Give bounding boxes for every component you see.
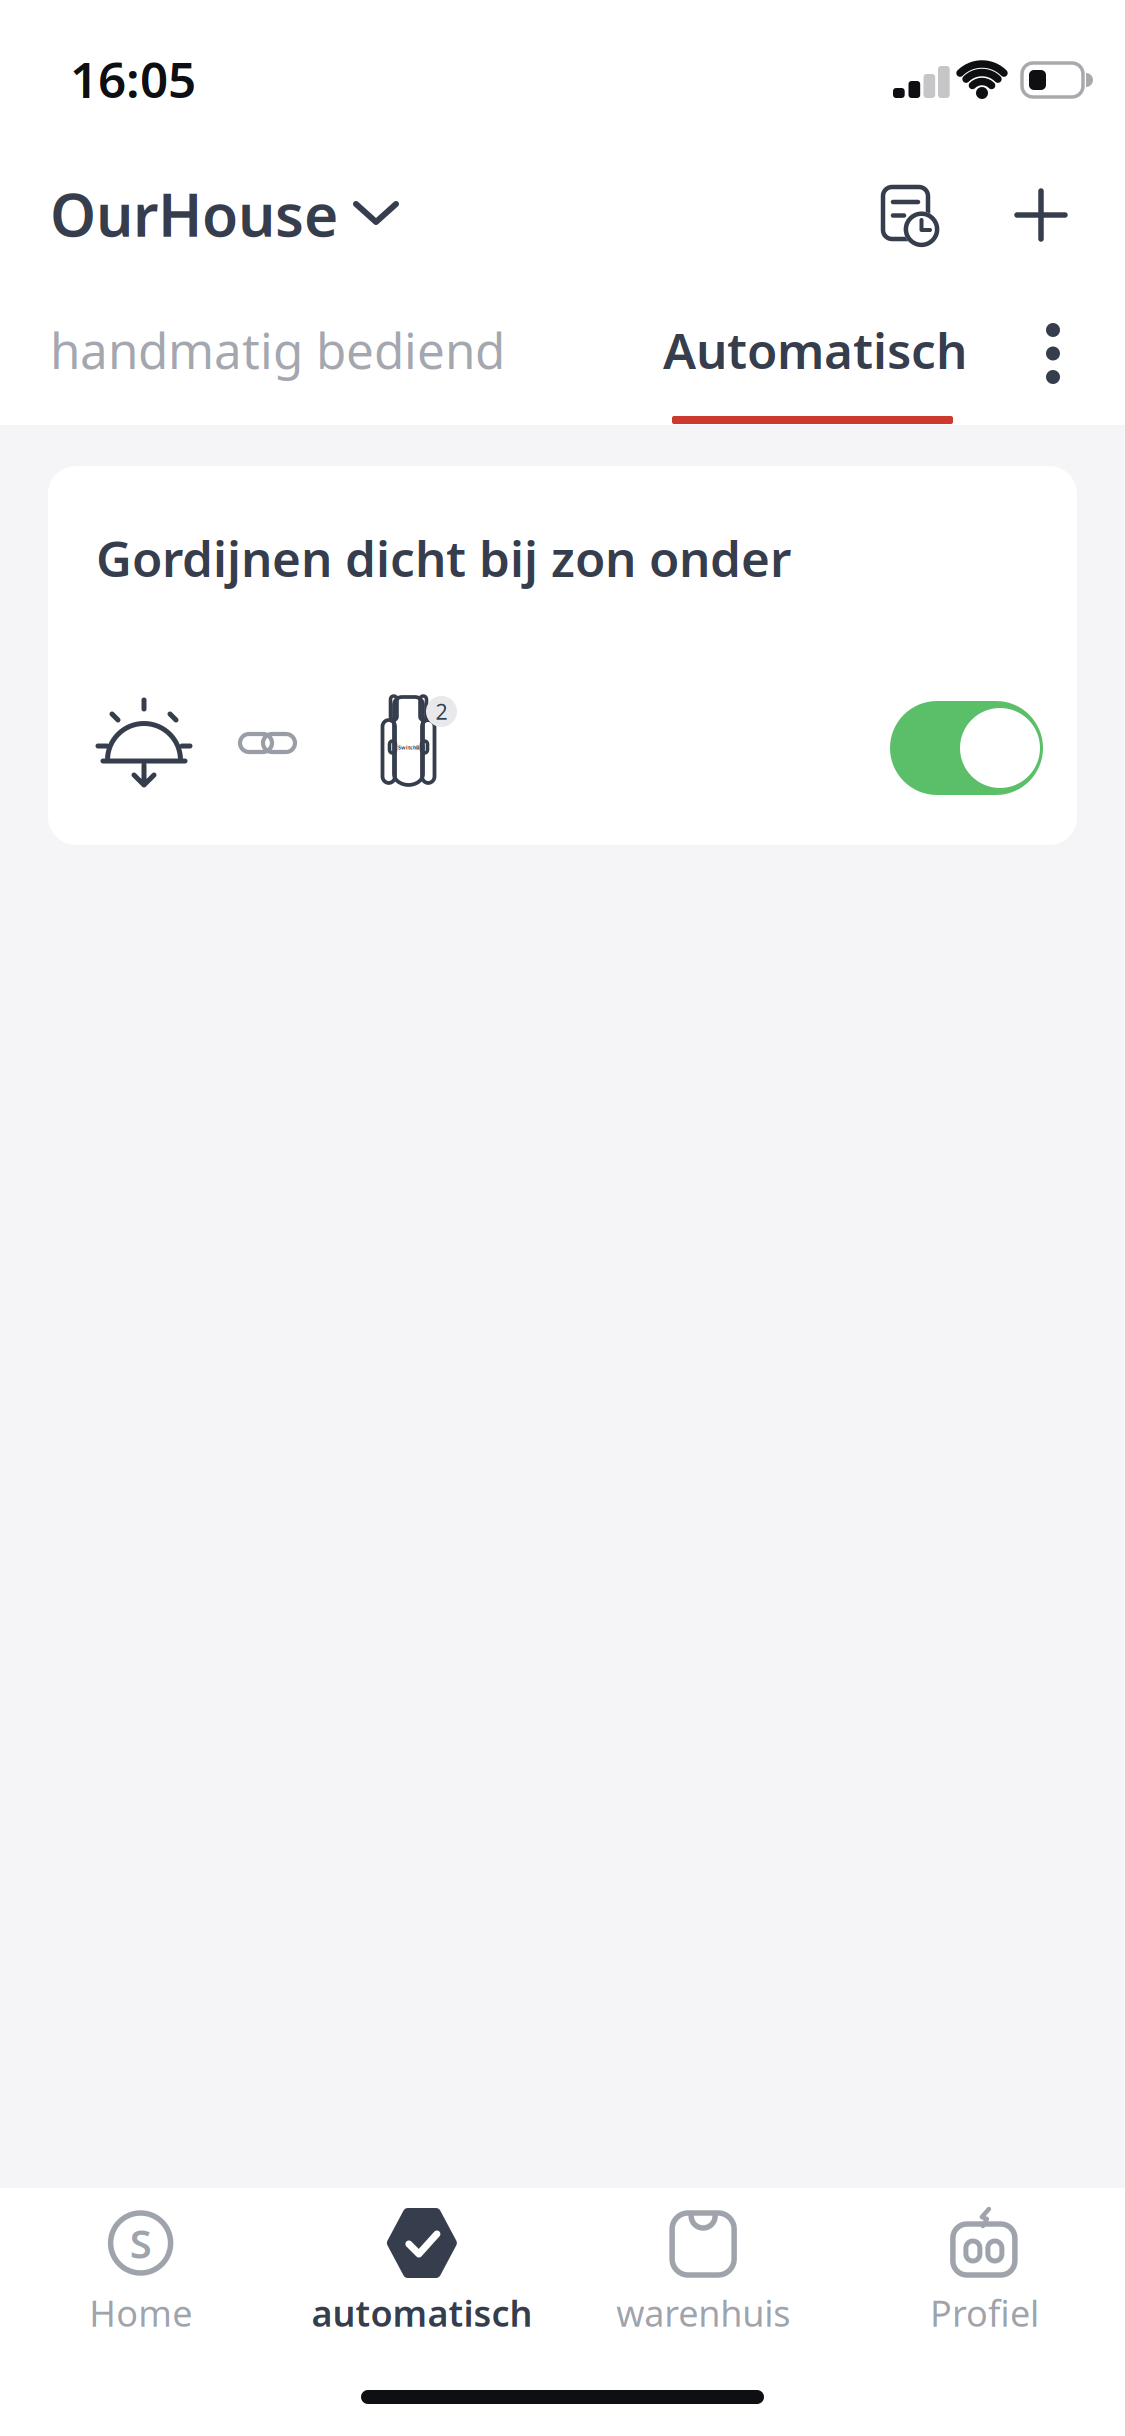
staticText: SwitchBot [398, 744, 425, 751]
staticText: Profiel [930, 2289, 1039, 2337]
button[interactable]: Automatisch [663, 317, 967, 382]
staticText: warenhuis [616, 2289, 790, 2337]
staticText: Gordijnen dicht bij zon onder [96, 525, 791, 590]
staticText: Automatisch [663, 317, 967, 382]
staticText: automatisch [311, 2289, 532, 2337]
button[interactable]: Scene enabled [890, 701, 1043, 795]
button[interactable]: Profiel [844, 2208, 1125, 2337]
staticText: 16:05 [70, 46, 196, 111]
button[interactable]: automatisch [281, 2208, 562, 2337]
button[interactable]: More options [1043, 320, 1063, 387]
staticText: handmatig bediend [50, 317, 505, 382]
button[interactable]: Logs [878, 183, 944, 250]
button[interactable]: S [0, 2208, 281, 2337]
staticText: Home [89, 2289, 192, 2337]
staticText: OurHouse [50, 175, 338, 253]
button[interactable]: OurHouse [50, 175, 410, 245]
button[interactable]: handmatig bediend [50, 317, 505, 382]
button[interactable]: warenhuis [562, 2208, 844, 2337]
staticText: 2 [435, 697, 447, 726]
button[interactable]: Gordijnen dicht bij zon onder [48, 466, 1077, 845]
button[interactable]: Add [1015, 189, 1067, 241]
staticText: S [130, 2216, 152, 2269]
